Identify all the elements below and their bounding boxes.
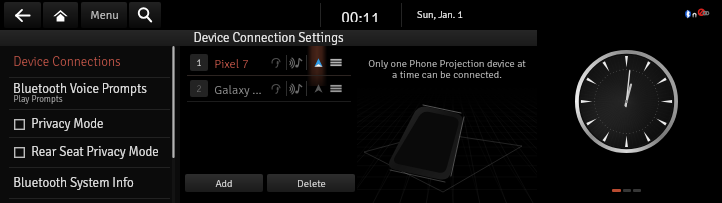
staticText: Add <box>215 177 233 190</box>
button[interactable]: Back <box>4 2 41 28</box>
button[interactable]: Home <box>43 2 78 28</box>
button[interactable]: 2 <box>181 77 357 101</box>
button[interactable]: Add <box>185 174 263 192</box>
staticText: Bluetooth Voice Prompts <box>13 81 147 97</box>
staticText: Delete <box>297 177 326 190</box>
staticText: Play Prompts <box>13 94 63 105</box>
button[interactable]: Privacy Mode <box>0 110 170 138</box>
button[interactable]: Bluetooth Voice Prompts <box>0 78 170 109</box>
staticText: 2 <box>196 83 202 95</box>
button[interactable]: Menu <box>81 2 127 28</box>
staticText: Bluetooth System Info <box>13 175 134 191</box>
staticText: 00:11 <box>341 8 380 22</box>
staticText: 1 <box>196 57 202 69</box>
staticText: Rear Seat Privacy Mode <box>31 144 159 160</box>
button[interactable]: Bluetooth System Info <box>0 168 170 198</box>
button[interactable]: Search <box>129 2 161 28</box>
staticText: Only one Phone Projection device at <box>368 57 526 70</box>
staticText: a time can be connected. <box>392 68 502 81</box>
button[interactable]: Rear Seat Privacy Mode <box>0 138 170 166</box>
button[interactable]: Delete <box>267 174 355 192</box>
staticText: Pixel 7 <box>214 56 249 71</box>
staticText: Galaxy ... <box>214 82 262 97</box>
button[interactable]: 1 <box>181 51 357 75</box>
staticText: Menu <box>90 8 119 23</box>
button[interactable]: Device Connections <box>0 47 170 77</box>
staticText: Privacy Mode <box>31 116 104 132</box>
staticText: Device Connections <box>13 54 121 70</box>
staticText: Sun, Jan. 1 <box>417 9 463 21</box>
staticText: Device Connection Settings <box>193 30 344 46</box>
